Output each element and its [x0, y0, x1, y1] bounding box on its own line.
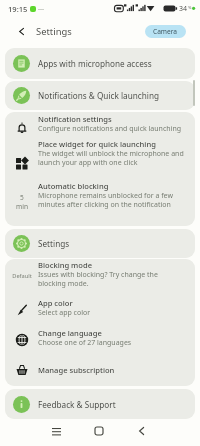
- button[interactable]: Place widget for quick launching: [5, 137, 195, 172]
- staticText: Apps with microphone access: [38, 58, 152, 69]
- staticText: Place widget for quick launching: [38, 139, 156, 149]
- staticText: Microphone remains unblocked for a few m…: [38, 191, 186, 209]
- button[interactable]: 5: [5, 172, 195, 225]
- staticText: Notifications & Quick launching: [38, 90, 159, 101]
- staticText: 5: [20, 193, 24, 202]
- staticText: min: [16, 202, 28, 211]
- staticText: App color: [38, 298, 73, 308]
- staticText: The widget will unblock the microphone a…: [38, 149, 186, 167]
- button[interactable]: Camera: [145, 25, 186, 38]
- button[interactable]: Change language: [5, 322, 195, 353]
- button[interactable]: Home: [78, 420, 120, 442]
- button[interactable]: Back: [0, 18, 34, 44]
- staticText: Issues with blocking? Try change the blo…: [38, 270, 186, 288]
- button[interactable]: Feedback & Support: [5, 389, 195, 419]
- staticText: Automatic blocking: [38, 181, 109, 191]
- staticText: %: [188, 5, 192, 11]
- staticText: Settings: [36, 25, 72, 38]
- staticText: 19:15: [8, 4, 28, 14]
- staticText: Default: [12, 272, 32, 280]
- button[interactable]: Recent apps: [35, 420, 77, 442]
- button[interactable]: Settings: [5, 229, 195, 258]
- staticText: ···: [38, 4, 45, 14]
- staticText: Settings: [38, 238, 70, 249]
- staticText: Choose one of 27 languages: [38, 338, 132, 348]
- staticText: Notification settings: [38, 114, 112, 124]
- button[interactable]: Notifications & Quick launching: [5, 81, 195, 110]
- staticText: Camera: [153, 27, 178, 36]
- staticText: Select app color: [38, 308, 91, 318]
- button[interactable]: App color: [5, 293, 195, 322]
- staticText: 34: [179, 4, 188, 14]
- button[interactable]: Apps with microphone access: [5, 48, 195, 79]
- button[interactable]: Notification settings: [5, 112, 195, 137]
- staticText: Blocking mode: [38, 260, 93, 270]
- button[interactable]: Manage subscription: [5, 353, 195, 385]
- staticText: Feedback & Support: [38, 399, 116, 410]
- button[interactable]: Default: [5, 259, 195, 293]
- staticText: Configure notifications and quick launch…: [38, 124, 182, 134]
- staticText: Manage subscription: [38, 365, 115, 375]
- staticText: Change language: [38, 328, 102, 338]
- button[interactable]: Back: [120, 420, 162, 442]
